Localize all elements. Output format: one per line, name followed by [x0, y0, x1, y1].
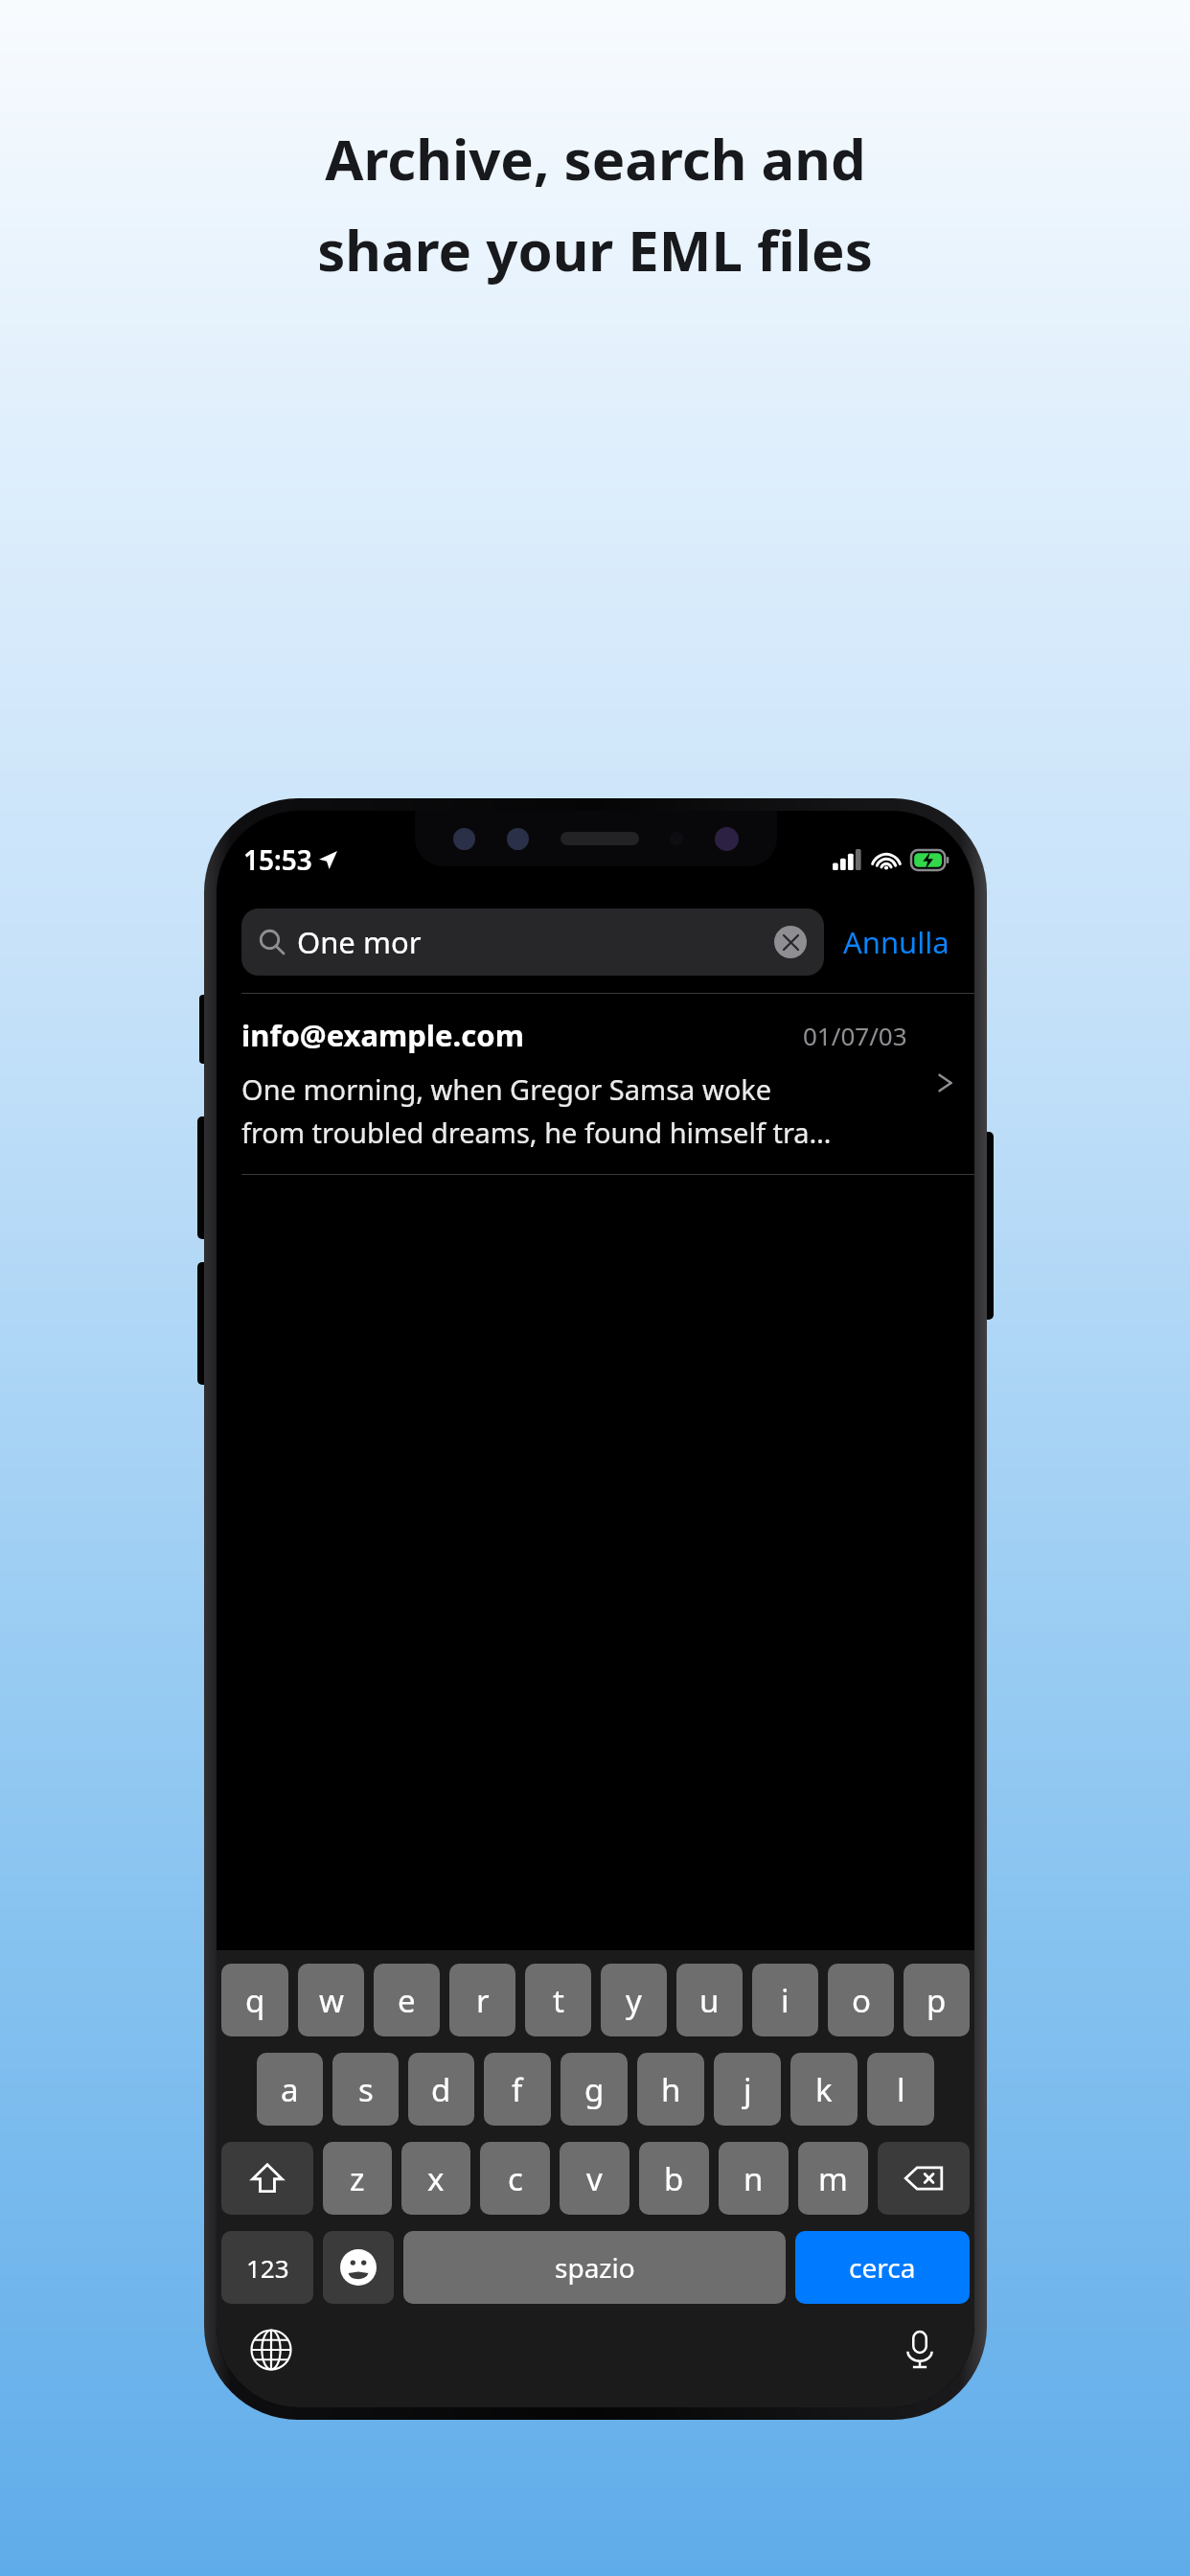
button[interactable]: t [525, 1964, 591, 2036]
button[interactable]: Emoji [323, 2231, 394, 2304]
staticText: g [584, 2068, 605, 2111]
button[interactable]: cerca [795, 2231, 970, 2304]
staticText: 123 [246, 2251, 289, 2285]
button[interactable]: y [601, 1964, 667, 2036]
staticText: q [245, 1979, 265, 2022]
staticText: cerca [849, 2249, 916, 2286]
button[interactable]: z [323, 2142, 392, 2215]
staticText: k [815, 2068, 833, 2111]
staticText: Annulla [843, 922, 950, 962]
button[interactable]: o [828, 1964, 894, 2036]
staticText: r [476, 1979, 490, 2022]
button[interactable]: g [561, 2053, 628, 2126]
button[interactable]: Shift [221, 2142, 313, 2215]
button[interactable]: 123 [221, 2231, 313, 2304]
button[interactable]: h [637, 2053, 704, 2126]
button[interactable]: n [719, 2142, 789, 2215]
staticText: v [586, 2157, 603, 2200]
button[interactable]: e [374, 1964, 440, 2036]
staticText: p [927, 1979, 947, 2022]
button[interactable]: Change keyboard language [243, 2322, 299, 2378]
staticText: n [744, 2157, 764, 2200]
button[interactable]: info@example.com [217, 994, 974, 1174]
staticText: spazio [555, 2249, 635, 2286]
button[interactable]: u [676, 1964, 743, 2036]
staticText: info@example.com [241, 1015, 524, 1055]
staticText: l [897, 2068, 905, 2111]
staticText: x [427, 2157, 445, 2200]
button[interactable]: v [560, 2142, 629, 2215]
button[interactable]: d [408, 2053, 474, 2126]
staticText: b [664, 2157, 684, 2200]
button[interactable]: m [798, 2142, 868, 2215]
staticText: One mor [297, 922, 422, 962]
staticText: t [553, 1979, 564, 2022]
staticText: y [626, 1979, 642, 2022]
button[interactable]: x [401, 2142, 470, 2215]
button[interactable]: spazio [403, 2231, 786, 2304]
staticText: s [358, 2068, 374, 2111]
button[interactable]: w [298, 1964, 364, 2036]
staticText: j [744, 2068, 752, 2111]
staticText: i [781, 1979, 790, 2022]
button[interactable]: f [484, 2053, 551, 2126]
staticText: a [281, 2068, 299, 2111]
button[interactable]: b [639, 2142, 709, 2215]
staticText: 01/07/03 [803, 1019, 907, 1052]
staticText: z [350, 2157, 365, 2200]
staticText: d [431, 2068, 451, 2111]
button[interactable]: k [790, 2053, 858, 2126]
button[interactable]: Dictation [892, 2322, 948, 2378]
button[interactable]: s [332, 2053, 399, 2126]
staticText: One morning, when Gregor Samsa woke [241, 1070, 772, 1108]
staticText: m [818, 2157, 848, 2200]
staticText: 15:53 [243, 841, 312, 878]
staticText: from troubled dreams, he found himself t… [241, 1114, 832, 1151]
button[interactable]: Clear [774, 926, 807, 958]
button[interactable]: Backspace [878, 2142, 970, 2215]
button[interactable]: j [714, 2053, 781, 2126]
staticText: share your EML files [317, 212, 873, 287]
button[interactable]: One mor [241, 908, 824, 976]
button[interactable]: r [449, 1964, 515, 2036]
staticText: c [508, 2157, 523, 2200]
staticText: f [512, 2068, 523, 2111]
staticText: w [319, 1979, 344, 2022]
button[interactable]: i [752, 1964, 818, 2036]
button[interactable]: l [867, 2053, 934, 2126]
staticText: e [398, 1979, 416, 2022]
button[interactable]: a [257, 2053, 323, 2126]
staticText: u [699, 1979, 720, 2022]
button[interactable]: p [904, 1964, 970, 2036]
staticText: Archive, search and [325, 121, 866, 196]
button[interactable]: q [221, 1964, 288, 2036]
button[interactable]: Annulla [839, 912, 953, 972]
staticText: o [852, 1979, 871, 2022]
button[interactable]: c [480, 2142, 550, 2215]
staticText: h [661, 2068, 681, 2111]
